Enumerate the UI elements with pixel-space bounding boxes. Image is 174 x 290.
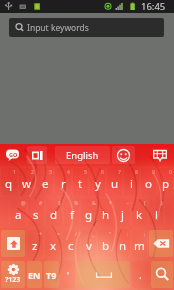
staticText: z — [32, 238, 38, 254]
staticText: ' — [67, 269, 70, 281]
staticText: l — [155, 207, 158, 223]
staticText: f — [70, 207, 74, 223]
button[interactable]: 5 — [72, 166, 89, 197]
button[interactable]: 9 — [140, 166, 157, 197]
button[interactable]: 4 — [54, 166, 72, 197]
staticText: % — [74, 200, 79, 207]
staticText: q — [5, 176, 13, 192]
staticText: y — [95, 176, 101, 192]
staticText: . — [139, 268, 142, 282]
button[interactable]: 6 — [89, 166, 106, 197]
staticText: p — [162, 176, 170, 192]
staticText: ; — [144, 231, 146, 238]
staticText: ?123 — [5, 275, 21, 285]
staticText: EN — [28, 269, 41, 281]
button[interactable]: English — [55, 146, 110, 164]
staticText: c — [68, 238, 74, 254]
staticText: 4 — [67, 169, 70, 176]
staticText: " — [109, 231, 112, 238]
staticText: r — [61, 176, 66, 192]
button[interactable]: ' — [61, 261, 75, 288]
button[interactable]: Search — [151, 261, 173, 288]
staticText: 2 — [31, 169, 34, 176]
button[interactable]: Input keywords — [9, 18, 164, 37]
button[interactable]: 8 — [123, 166, 140, 197]
button[interactable]: Shift — [1, 230, 25, 257]
staticText: $ — [58, 200, 61, 207]
staticText: GO — [9, 151, 18, 158]
staticText: s — [33, 207, 39, 223]
staticText: 3 — [49, 169, 52, 176]
staticText: @ — [21, 200, 26, 207]
staticText: a — [15, 207, 22, 223]
button[interactable]: / — [62, 228, 80, 259]
button[interactable]: " — [97, 228, 114, 259]
staticText: 1 — [13, 169, 16, 176]
staticText: x — [50, 238, 57, 254]
staticText: j — [121, 207, 124, 223]
button[interactable]: _ — [80, 228, 97, 259]
button[interactable]: 7 — [106, 166, 123, 197]
staticText: & — [92, 200, 96, 207]
button[interactable]: ) — [148, 197, 165, 228]
staticText: n — [119, 238, 127, 254]
staticText: : — [127, 231, 129, 238]
button[interactable]: @ — [9, 197, 27, 228]
button[interactable]: & — [80, 197, 97, 228]
staticText: = — [57, 231, 60, 238]
button[interactable]: 0 — [157, 166, 174, 197]
button[interactable]: Symbols and settings — [1, 261, 25, 288]
staticText: m — [134, 238, 145, 254]
staticText: g — [85, 207, 93, 223]
button[interactable]: Emoji — [112, 146, 135, 164]
staticText: t — [78, 176, 83, 192]
button[interactable]: = — [44, 228, 62, 259]
button[interactable]: 1 — [0, 166, 18, 197]
button[interactable]: Backspace — [149, 230, 173, 257]
button[interactable]: - — [114, 197, 131, 228]
staticText: i — [130, 176, 133, 192]
staticText: ) — [161, 200, 163, 207]
button[interactable]: ( — [131, 197, 148, 228]
staticText: e — [42, 176, 49, 192]
staticText: 9 — [152, 169, 155, 176]
staticText: v — [86, 238, 92, 254]
button[interactable]: ; — [131, 228, 148, 259]
staticText: k — [136, 207, 143, 223]
staticText: Input keywords — [27, 22, 89, 34]
button[interactable]: # — [27, 197, 45, 228]
button[interactable]: Stickers — [146, 144, 174, 166]
button[interactable]: % — [63, 197, 80, 228]
staticText: English — [66, 149, 99, 162]
staticText: # — [39, 200, 43, 207]
staticText: + — [39, 231, 42, 238]
staticText: 8 — [135, 169, 138, 176]
staticText: - — [127, 200, 129, 207]
button[interactable]: 2 — [18, 166, 36, 197]
button[interactable]: + — [26, 228, 44, 259]
staticText: 7 — [118, 169, 121, 176]
staticText: w — [22, 176, 32, 192]
button[interactable]: * — [97, 197, 114, 228]
staticText: 6 — [101, 169, 104, 176]
button[interactable]: $ — [45, 197, 63, 228]
staticText: u — [111, 176, 119, 192]
button[interactable]: Space — [77, 261, 130, 288]
staticText: _ — [92, 231, 95, 238]
staticText: d — [50, 207, 58, 223]
button[interactable]: . — [132, 261, 149, 288]
button[interactable]: 3 — [36, 166, 54, 197]
button[interactable]: : — [114, 228, 131, 259]
staticText: o — [145, 176, 152, 192]
staticText: h — [102, 207, 110, 223]
staticText: / — [75, 231, 77, 238]
button[interactable]: T9 — [44, 261, 59, 288]
button[interactable]: Clipboard — [27, 146, 47, 164]
staticText: 5 — [84, 169, 87, 176]
staticText: ( — [144, 200, 146, 207]
staticText: T9 — [46, 269, 57, 281]
staticText: * — [109, 200, 112, 207]
staticText: 0 — [169, 169, 172, 176]
button[interactable]: EN — [27, 261, 42, 288]
button[interactable]: GO Keyboard menu — [0, 144, 26, 166]
